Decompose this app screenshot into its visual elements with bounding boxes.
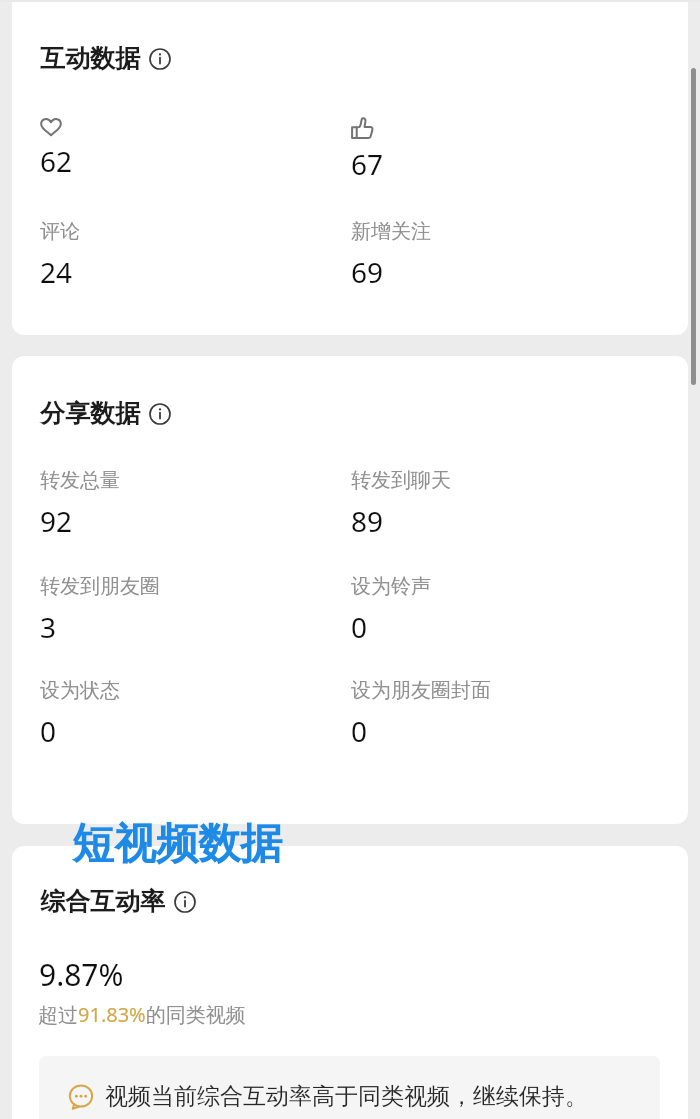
staticText: 3 bbox=[40, 608, 57, 646]
button[interactable]: 综合互动率 bbox=[40, 886, 196, 917]
staticText: 24 bbox=[40, 253, 73, 291]
staticText: 设为状态 bbox=[40, 678, 120, 703]
staticText: 9.87% bbox=[39, 954, 124, 995]
staticText: 短视频数据 bbox=[72, 818, 282, 871]
staticText: 0 bbox=[40, 712, 57, 750]
button[interactable]: 转发到朋友圈 bbox=[40, 574, 340, 646]
button[interactable]: 设为状态 bbox=[40, 678, 340, 750]
other: Tip bbox=[68, 1084, 94, 1109]
staticText: 转发总量 bbox=[40, 468, 120, 493]
staticText: 69 bbox=[351, 253, 384, 291]
button[interactable]: 新增关注 bbox=[351, 219, 651, 291]
button[interactable]: Tip bbox=[39, 1056, 660, 1119]
button[interactable]: 67 bbox=[351, 117, 651, 183]
button[interactable]: 互动数据 bbox=[40, 43, 171, 74]
button[interactable]: 设为铃声 bbox=[351, 574, 651, 646]
staticText: 互动数据 bbox=[40, 43, 140, 74]
button[interactable]: 设为朋友圈封面 bbox=[351, 678, 651, 750]
staticText: 89 bbox=[351, 502, 384, 540]
staticText: 62 bbox=[40, 142, 73, 180]
staticText: 转发到朋友圈 bbox=[40, 574, 160, 599]
button[interactable]: 转发到聊天 bbox=[351, 468, 651, 540]
staticText: 转发到聊天 bbox=[351, 468, 451, 493]
staticText: 视频当前综合互动率高于同类视频，继续保持。 bbox=[105, 1082, 588, 1111]
button[interactable]: 62 bbox=[40, 117, 340, 180]
other: More info bbox=[149, 403, 171, 425]
staticText: 分享数据 bbox=[40, 398, 140, 429]
staticText: 92 bbox=[40, 502, 73, 540]
staticText: 设为铃声 bbox=[351, 574, 431, 599]
staticText: 设为朋友圈封面 bbox=[351, 678, 491, 703]
other: More info bbox=[174, 891, 196, 913]
button[interactable]: 评论 bbox=[40, 219, 340, 291]
staticText: 新增关注 bbox=[351, 219, 431, 244]
staticText: 评论 bbox=[40, 219, 80, 244]
staticText: 67 bbox=[351, 145, 384, 183]
staticText: 超过91.83%的同类视频 bbox=[38, 1001, 246, 1028]
other: More info bbox=[149, 48, 171, 70]
staticText: 综合互动率 bbox=[40, 886, 165, 917]
button[interactable]: 分享数据 bbox=[40, 398, 171, 429]
staticText: 0 bbox=[351, 608, 368, 646]
staticText: 0 bbox=[351, 712, 368, 750]
button[interactable]: 转发总量 bbox=[40, 468, 340, 540]
